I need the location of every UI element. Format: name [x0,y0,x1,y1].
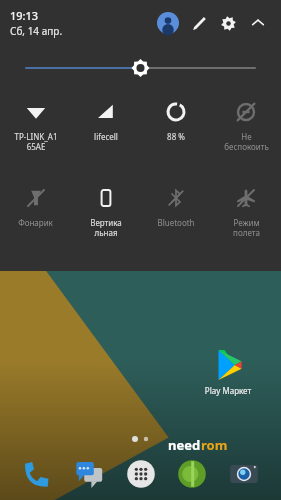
button[interactable]: Collapse [243,8,273,38]
staticText: 19:13 [10,8,39,23]
button[interactable]: Green app [171,453,213,495]
button[interactable]: Mobile data [71,92,141,178]
button[interactable]: Wi-Fi [0,92,71,178]
button[interactable]: Play Маркет [200,348,256,404]
button[interactable]: Do not disturb [211,92,281,178]
staticText: need [168,436,201,454]
button[interactable]: Airplane mode [211,178,281,254]
button[interactable]: Phone [16,453,58,495]
staticText: lifecell [94,131,118,142]
button[interactable]: Battery [141,92,211,178]
button[interactable]: Camera [223,453,265,495]
staticText: rom [201,436,228,454]
staticText: Режим полета [233,217,260,238]
button[interactable]: User profile [153,8,183,38]
staticText: Не беспокоить [224,131,269,152]
button[interactable]: Flashlight [0,178,71,254]
button[interactable]: Auto-rotate [71,178,141,254]
staticText: Сб, 14 апр. [10,24,63,38]
button[interactable]: Settings [213,8,243,38]
staticText: TP-LINK_A1 65AE [14,131,58,152]
button[interactable]: Brightness [0,46,281,90]
staticText: Play Маркет [192,385,264,396]
button[interactable]: Bluetooth [141,178,211,254]
button[interactable]: Edit tiles [183,8,213,38]
button[interactable]: All apps [120,453,162,495]
staticText: Вертика льная [90,217,122,238]
staticText: Bluetooth [157,217,195,228]
staticText: Фонарик [18,217,53,228]
button[interactable]: Messages [68,453,110,495]
staticText: 88 % [167,131,185,142]
